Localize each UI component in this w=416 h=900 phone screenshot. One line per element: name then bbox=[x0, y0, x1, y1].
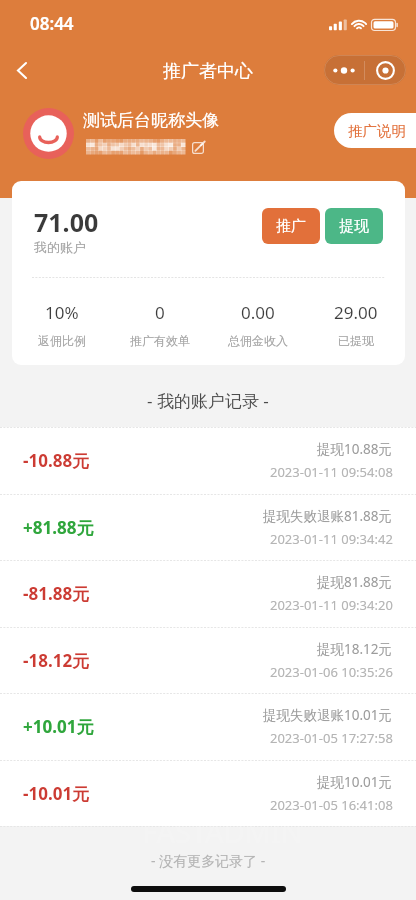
staticText: 提现 bbox=[339, 217, 369, 236]
button[interactable]: +10.01元 bbox=[0, 693, 416, 760]
staticText: +81.88元 bbox=[23, 516, 94, 539]
staticText: 2023-01-06 10:35:26 bbox=[270, 663, 393, 681]
staticText: 测试后台昵称头像 bbox=[83, 110, 219, 131]
button[interactable]: 提现 bbox=[325, 208, 383, 244]
staticText: 返佣比例 bbox=[38, 333, 86, 348]
staticText: +10.01元 bbox=[23, 715, 94, 738]
button[interactable]: 0.00 bbox=[209, 301, 307, 348]
staticText: -18.12元 bbox=[23, 649, 90, 672]
staticText: 2023-01-05 17:27:58 bbox=[270, 729, 393, 747]
staticText: 提现18.12元 bbox=[317, 640, 393, 658]
button[interactable]: -81.88元 bbox=[0, 560, 416, 627]
button[interactable]: Close mini program bbox=[365, 55, 406, 85]
button[interactable]: Back bbox=[2, 48, 42, 92]
staticText: 提现失败退账81.88元 bbox=[263, 507, 393, 525]
staticText: -10.88元 bbox=[23, 449, 90, 472]
staticText: - 没有更多记录了 - bbox=[151, 851, 266, 870]
staticText: 2023-01-05 16:41:08 bbox=[270, 796, 393, 814]
staticText: 推广 bbox=[276, 217, 306, 236]
staticText: 10% bbox=[45, 301, 79, 324]
staticText: -81.88元 bbox=[23, 582, 90, 605]
staticText: 提现10.88元 bbox=[317, 440, 393, 458]
button[interactable]: -18.12元 bbox=[0, 627, 416, 694]
staticText: 2023-01-11 09:34:20 bbox=[270, 596, 393, 614]
staticText: 提现81.88元 bbox=[317, 573, 393, 591]
button[interactable]: More options bbox=[324, 55, 364, 85]
button[interactable]: 推广说明 bbox=[334, 113, 416, 148]
staticText: 0.00 bbox=[241, 301, 275, 324]
button[interactable]: -10.01元 bbox=[0, 760, 416, 827]
button[interactable]: -10.88元 bbox=[0, 427, 416, 494]
button[interactable]: 29.00 bbox=[307, 301, 405, 348]
button[interactable]: 推广 bbox=[262, 208, 320, 244]
button[interactable]: 0 bbox=[111, 301, 209, 348]
staticText: 推广说明 bbox=[348, 122, 406, 140]
staticText: 提现失败退账10.01元 bbox=[263, 706, 393, 724]
staticText: FASTADMIN bbox=[142, 812, 303, 846]
staticText: 提现10.01元 bbox=[317, 773, 393, 791]
staticText: 推广有效单 bbox=[130, 333, 190, 348]
staticText: 总佣金收入 bbox=[228, 333, 288, 348]
button[interactable]: +81.88元 bbox=[0, 494, 416, 561]
staticText: 71.00 bbox=[34, 205, 99, 239]
staticText: 已提现 bbox=[338, 333, 374, 348]
staticText: 08:44 bbox=[30, 12, 74, 35]
staticText: 我的账户 bbox=[34, 239, 86, 255]
staticText: 2023-01-11 09:34:42 bbox=[270, 530, 393, 548]
button[interactable]: 10% bbox=[12, 301, 111, 348]
staticText: 2023-01-11 09:54:08 bbox=[270, 463, 393, 481]
staticText: - 我的账户记录 - bbox=[147, 389, 269, 412]
staticText: 推广者中心 bbox=[163, 60, 253, 83]
staticText: 0 bbox=[155, 301, 165, 324]
staticText: 29.00 bbox=[334, 301, 378, 324]
staticText: -10.01元 bbox=[23, 782, 90, 805]
